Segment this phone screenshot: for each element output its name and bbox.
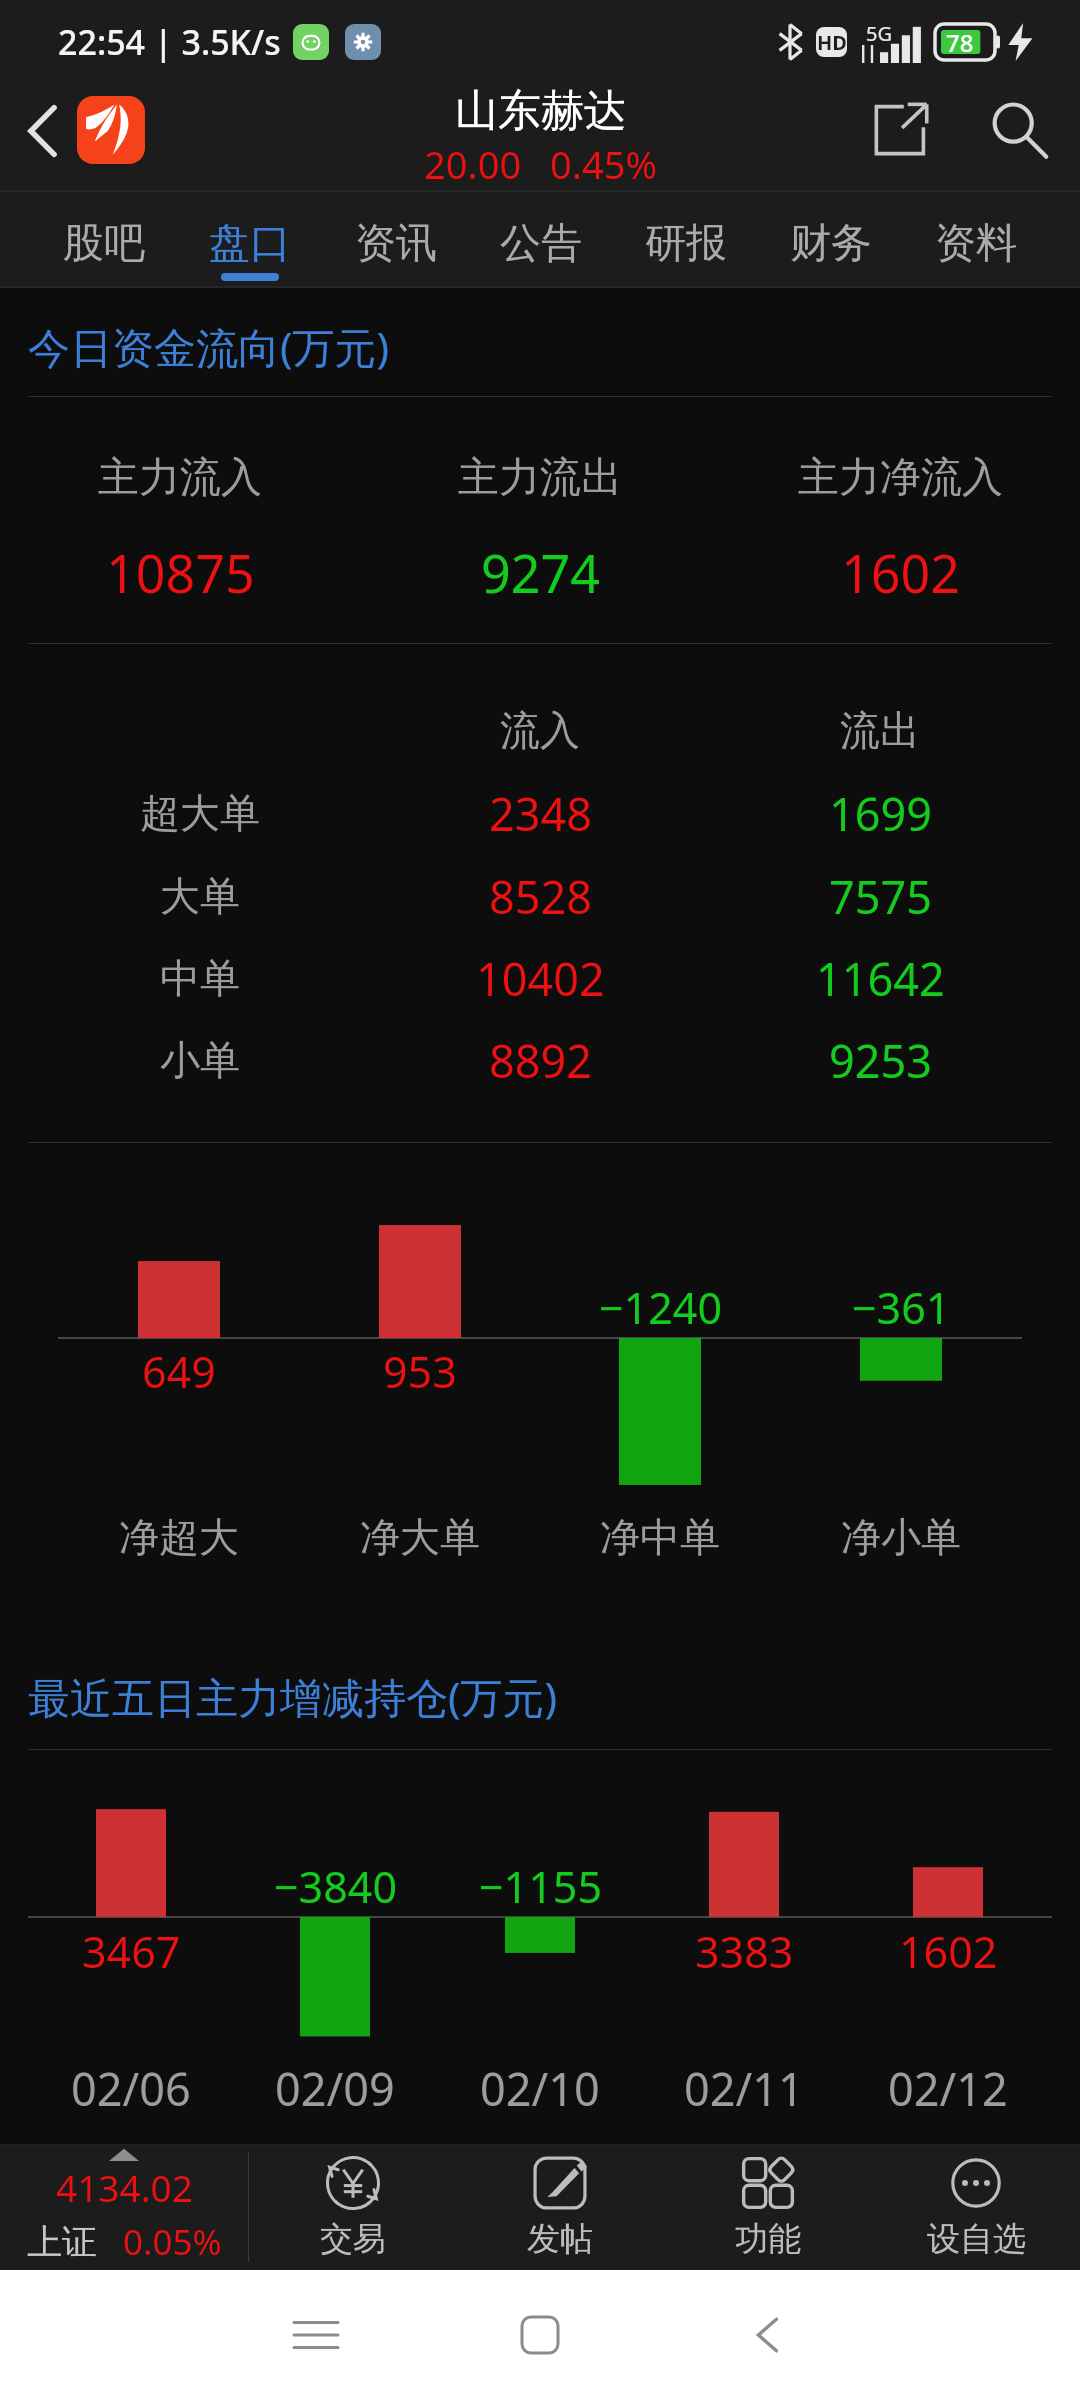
staticText: 上证 (27, 2220, 97, 2264)
staticText: 3467 (82, 1922, 181, 1981)
staticText: 1699 (829, 783, 932, 843)
staticText: 股吧 (63, 218, 145, 270)
staticText: 02/09 (275, 2058, 395, 2118)
staticText: 0.05% (123, 2218, 222, 2266)
staticText: 22:54 | 3.5K/s (58, 19, 281, 65)
staticText: −1240 (599, 1278, 722, 1337)
button[interactable]: 股吧 (32, 192, 176, 288)
staticText: 主力流入 (98, 452, 262, 504)
staticText: 78 (946, 26, 974, 59)
staticText: 3383 (695, 1922, 794, 1981)
staticText: 山东赫达 (455, 84, 627, 138)
staticText: 1602 (841, 537, 960, 597)
staticText: 资料 (935, 218, 1017, 270)
staticText: 10875 (106, 537, 255, 597)
button[interactable]: 4134.02 (0, 2144, 248, 2270)
button[interactable]: Back (4, 80, 80, 182)
button[interactable]: Back (714, 2281, 822, 2389)
staticText: 流出 (840, 705, 920, 755)
staticText: 公告 (500, 218, 582, 270)
button[interactable]: 公告 (469, 192, 613, 288)
staticText: 流入 (500, 705, 580, 755)
staticText: 02/12 (888, 2058, 1008, 2118)
staticText: 研报 (645, 218, 727, 270)
staticText: 5G (866, 20, 892, 47)
staticText: 8892 (489, 1030, 592, 1090)
staticText: 11642 (816, 948, 945, 1008)
staticText: 功能 (735, 2218, 801, 2260)
staticText: 主力流出 (458, 452, 622, 504)
staticText: 20.00 (424, 138, 522, 190)
button[interactable]: 盘口 (178, 192, 322, 288)
staticText: 1602 (899, 1922, 998, 1981)
staticText: 0.45% (550, 138, 657, 190)
button[interactable]: Home (486, 2281, 594, 2389)
staticText: 交易 (320, 2218, 386, 2260)
staticText: 中单 (160, 953, 240, 1003)
button[interactable]: 发帖 (456, 2144, 664, 2270)
staticText: 超大单 (140, 788, 260, 838)
staticText: 9253 (829, 1030, 932, 1090)
staticText: 最近五日主力增减持仓(万元) (28, 1668, 558, 1725)
staticText: 8528 (489, 866, 592, 926)
staticText: 今日资金流向(万元) (28, 318, 390, 375)
staticText: 小单 (160, 1035, 240, 1085)
staticText: 02/11 (684, 2058, 804, 2118)
staticText: 953 (383, 1342, 457, 1401)
staticText: −361 (852, 1278, 951, 1337)
staticText: 02/06 (71, 2058, 191, 2118)
staticText: −3840 (274, 1857, 397, 1916)
staticText: 资讯 (355, 218, 437, 270)
button[interactable]: Search (969, 79, 1069, 181)
staticText: 发帖 (527, 2218, 593, 2260)
button[interactable]: 资讯 (324, 192, 468, 288)
button[interactable]: 财务 (759, 192, 903, 288)
staticText: 净中单 (600, 1512, 720, 1562)
button[interactable]: Share (851, 78, 951, 180)
staticText: 9274 (481, 537, 600, 597)
button[interactable]: Home (77, 96, 145, 164)
staticText: 10402 (476, 948, 605, 1008)
staticText: 设自选 (927, 2218, 1026, 2260)
staticText: 2348 (489, 783, 592, 843)
staticText: 净超大 (119, 1512, 239, 1562)
button[interactable]: 交易 (249, 2144, 456, 2270)
staticText: 净大单 (360, 1512, 480, 1562)
staticText: 02/10 (480, 2058, 600, 2118)
staticText: 净小单 (841, 1512, 961, 1562)
staticText: 盘口 (209, 218, 291, 270)
staticText: −1155 (479, 1857, 602, 1916)
button[interactable]: 研报 (614, 192, 758, 288)
staticText: 4134.02 (56, 2162, 193, 2212)
button[interactable]: 功能 (664, 2144, 872, 2270)
staticText: 7575 (829, 866, 932, 926)
staticText: HD (817, 29, 847, 56)
button[interactable]: Recents (262, 2281, 370, 2389)
staticText: 大单 (160, 871, 240, 921)
button[interactable]: 资料 (904, 192, 1048, 288)
staticText: 649 (142, 1342, 216, 1401)
staticText: 财务 (790, 218, 872, 270)
staticText: 主力净流入 (798, 452, 1003, 504)
button[interactable]: 设自选 (872, 2144, 1080, 2270)
